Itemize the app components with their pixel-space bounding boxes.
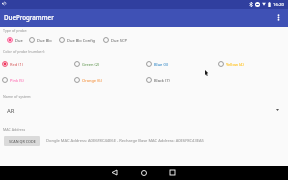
staticText: Due SCP	[111, 38, 127, 43]
staticText: Dongle MAC Address: A0E6F8C44E6E - Recha…	[46, 138, 204, 144]
staticText: Black (7)	[154, 78, 170, 83]
staticText: MAC Address	[3, 127, 26, 132]
button[interactable]: Orange (6)	[74, 77, 146, 83]
button[interactable]: Due Blo Config	[59, 37, 96, 43]
staticText: Due	[15, 38, 23, 43]
staticText: Blue (3)	[154, 62, 169, 67]
button[interactable]: SCAN QR CODE	[4, 136, 40, 146]
staticText: Orange (6)	[82, 78, 102, 83]
staticText: Yellow (4)	[226, 62, 244, 67]
button[interactable]: Home	[137, 166, 150, 179]
button[interactable]: Back	[108, 166, 121, 179]
button[interactable]: Yellow (4)	[218, 61, 288, 67]
staticText: SCAN QR CODE	[9, 139, 36, 144]
staticText: Name of system:	[3, 94, 32, 99]
staticText: Type of probe:	[3, 28, 28, 33]
button[interactable]: Due SCP	[103, 37, 127, 43]
staticText: Due Blo	[37, 38, 52, 43]
staticText: Due Blo Config	[67, 38, 96, 43]
button[interactable]: Red (1)	[2, 61, 74, 67]
button[interactable]: Blue (3)	[146, 61, 218, 67]
staticText: Red (1)	[10, 62, 23, 67]
staticText: 16:20	[273, 1, 284, 7]
button[interactable]: Pink (5)	[2, 77, 74, 83]
button[interactable]: Recent apps	[166, 166, 179, 179]
staticText: AR	[7, 107, 15, 115]
staticText: Pink (5)	[10, 78, 24, 83]
button[interactable]: More options	[271, 10, 285, 24]
button[interactable]: Due	[7, 37, 23, 43]
button[interactable]: Black (7)	[146, 77, 218, 83]
staticText: DueProgrammer	[4, 13, 54, 21]
button[interactable]: Due Blo	[29, 37, 52, 43]
button[interactable]: Green (2)	[74, 61, 146, 67]
staticText: Color of probe (number):	[3, 49, 45, 54]
staticText: Green (2)	[82, 62, 100, 67]
